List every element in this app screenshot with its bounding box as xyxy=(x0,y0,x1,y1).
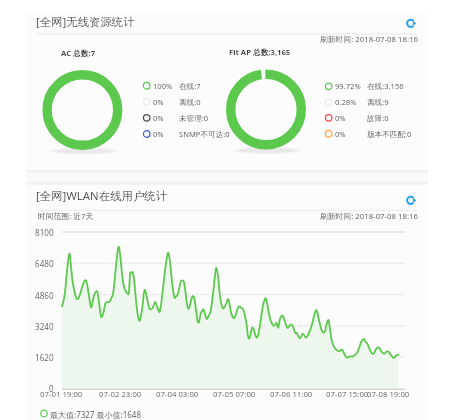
staticText: 07-07 15:00 xyxy=(326,389,369,400)
staticText: 在线:3,156 xyxy=(367,81,404,91)
staticText: 在线:7 xyxy=(179,81,201,91)
staticText: 0% xyxy=(153,97,164,107)
staticText: 刷新时间: 2018-07-08 18:16 xyxy=(320,211,418,222)
button[interactable]: [全网]无线资源统计 卡片 xyxy=(26,12,428,170)
staticText: 刷新时间: 2018-07-08 18:16 xyxy=(320,34,418,45)
staticText: 0.28% xyxy=(335,97,357,107)
staticText: 99.72% xyxy=(335,81,361,91)
staticText: 8100 xyxy=(35,227,54,238)
staticText: 时间范围: 近7天 xyxy=(38,211,94,222)
staticText: 离线:0 xyxy=(179,97,201,107)
staticText: 07-04 03:00 xyxy=(156,389,199,400)
button[interactable]: [全网]WLAN在线用户统计 卡片 xyxy=(26,185,428,420)
staticText: 3240 xyxy=(35,321,54,332)
staticText: 离线:9 xyxy=(367,97,389,107)
button[interactable]: 刷新 xyxy=(401,13,421,33)
staticText: 100% xyxy=(153,81,173,91)
staticText: [全网]WLAN在线用户统计 xyxy=(36,188,168,204)
staticText: 6480 xyxy=(35,258,54,269)
staticText: 07-06 11:00 xyxy=(270,389,313,400)
button[interactable]: 刷新 xyxy=(401,190,421,210)
staticText: 最大值:7327 最小值:1648 xyxy=(50,409,141,420)
staticText: 未管理:0 xyxy=(179,113,209,123)
staticText: 0% xyxy=(153,113,164,123)
staticText: 1620 xyxy=(35,352,54,363)
staticText: [全网]无线资源统计 xyxy=(36,14,135,30)
staticText: 0% xyxy=(335,113,346,123)
staticText: 0% xyxy=(335,129,346,139)
staticText: 07-05 07:00 xyxy=(213,389,256,400)
staticText: Fit AP 总数:3,165 xyxy=(229,47,291,58)
staticText: SNMP不可达:0 xyxy=(179,129,230,139)
staticText: 0 xyxy=(49,383,54,394)
staticText: 版本不匹配:0 xyxy=(367,129,412,139)
staticText: 07-02 23:00 xyxy=(99,389,142,400)
staticText: AC 总数:7 xyxy=(61,48,96,59)
staticText: 0% xyxy=(153,129,164,139)
staticText: 4860 xyxy=(35,290,54,301)
staticText: 故障:0 xyxy=(367,113,389,123)
staticText: 07-01 19:00 xyxy=(40,389,83,400)
staticText: 07-08 19:00 xyxy=(367,389,410,400)
